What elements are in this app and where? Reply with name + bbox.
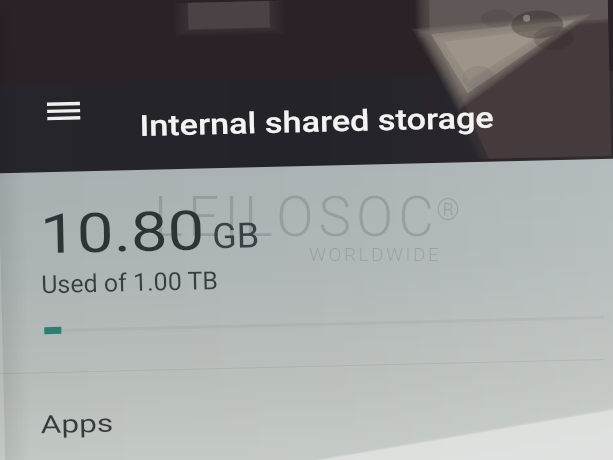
staticText: LEILOSOC [154,185,440,249]
button[interactable]: Apps [0,371,606,460]
staticText: 10.80 [39,198,206,266]
button[interactable]: Open navigation drawer [35,100,90,137]
staticText: Used of 1.00 TB [41,266,218,299]
staticText: ® [436,192,461,227]
staticText: WORLDWIDE [309,243,442,265]
staticText: Apps [40,409,114,439]
staticText: GB [212,215,260,257]
staticText: Internal shared storage [139,100,495,143]
